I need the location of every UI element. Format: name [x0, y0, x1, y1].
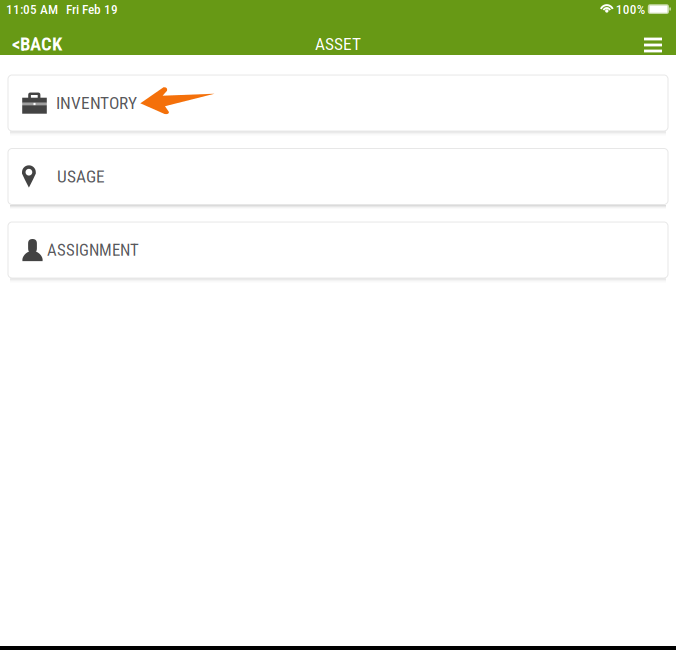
button[interactable]: Menu	[631, 19, 676, 55]
button[interactable]: USAGE	[8, 148, 668, 204]
staticText: Fri Feb 19	[66, 2, 118, 17]
button[interactable]: <BACK	[0, 19, 74, 55]
staticText: 11:05 AM	[6, 2, 58, 17]
button[interactable]: ASSIGNMENT	[8, 222, 668, 278]
button[interactable]: INVENTORY	[8, 75, 668, 131]
staticText: ASSET	[315, 34, 361, 54]
staticText: <BACK	[12, 33, 62, 55]
staticText: ASSIGNMENT	[47, 240, 139, 260]
staticText: 100%	[616, 2, 645, 17]
staticText: USAGE	[57, 166, 105, 187]
staticText: INVENTORY	[56, 93, 137, 113]
